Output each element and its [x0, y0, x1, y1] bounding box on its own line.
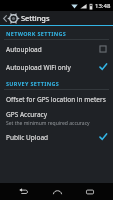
button[interactable]: Back	[12, 183, 34, 200]
staticText: Autoupload WiFi only	[6, 63, 99, 72]
staticText: Offset for GPS location in meters	[6, 95, 106, 104]
staticText: Autoupload	[6, 45, 99, 54]
staticText: SURVEY SETTINGS	[6, 80, 60, 87]
button[interactable]: Offset for GPS location in meters	[0, 90, 113, 108]
staticText: Set the minimum required accuracy	[6, 120, 90, 127]
other: Checked	[99, 63, 107, 71]
staticText: Public Upload	[6, 133, 99, 142]
button[interactable]: Autoupload WiFi only	[0, 58, 113, 76]
button[interactable]: Recent apps	[79, 183, 101, 200]
other: Unchecked	[99, 45, 107, 53]
button[interactable]: Autoupload	[0, 40, 113, 58]
button[interactable]: Home	[46, 183, 68, 200]
other: Checked	[99, 133, 107, 141]
button[interactable]: Navigate up	[0, 11, 113, 25]
other: Navigate up	[3, 15, 7, 22]
staticText: 13:48	[95, 2, 111, 10]
staticText: Settings	[21, 13, 50, 23]
button[interactable]: GPS Accuracy	[0, 108, 113, 128]
staticText: GPS Accuracy	[6, 110, 47, 119]
button[interactable]: Public Upload	[0, 128, 113, 146]
staticText: NETWORK SETTINGS	[6, 30, 67, 37]
